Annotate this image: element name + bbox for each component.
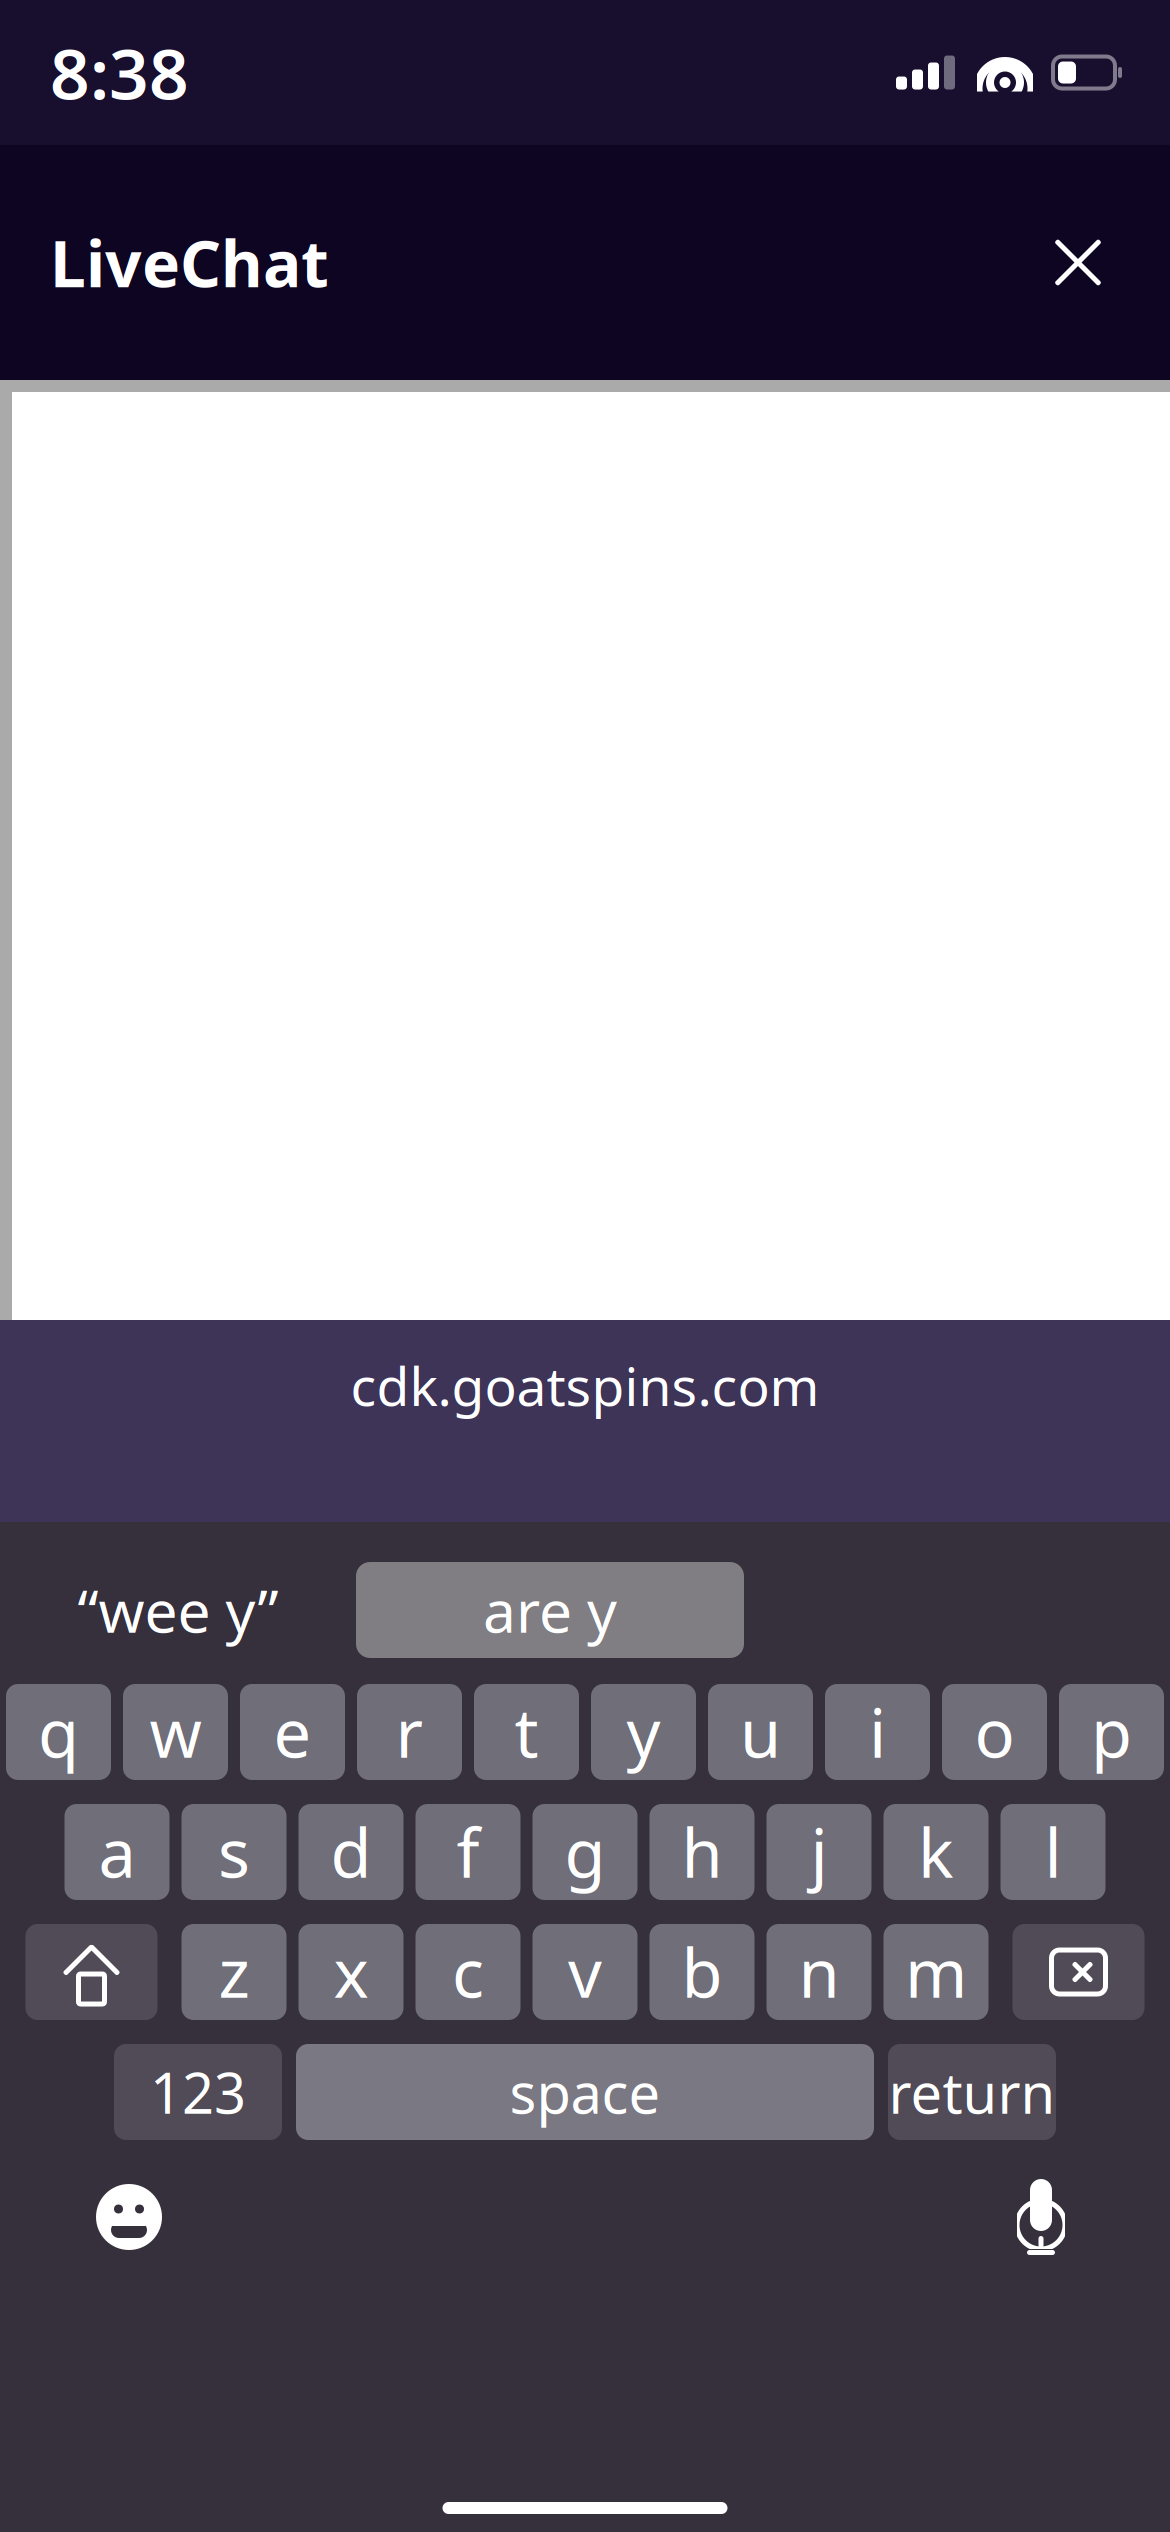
button[interactable]: m (883, 1924, 988, 2020)
button[interactable]: r (357, 1684, 462, 1780)
staticText: w (149, 1688, 201, 1776)
staticText: o (974, 1688, 1014, 1776)
staticText: space (509, 2055, 660, 2129)
button[interactable]: e (240, 1684, 345, 1780)
staticText: b (681, 1928, 722, 2016)
staticText: h (681, 1808, 722, 1896)
button[interactable]: k (883, 1804, 988, 1900)
staticText: s (218, 1808, 250, 1896)
button[interactable]: b (649, 1924, 754, 2020)
staticText: i (869, 1688, 886, 1776)
staticText: j (810, 1808, 827, 1896)
button[interactable]: Dictate (986, 2162, 1096, 2272)
staticText: m (905, 1928, 967, 2016)
staticText: are y (483, 1571, 617, 1649)
button[interactable]: v (532, 1924, 637, 2020)
staticText: t (514, 1688, 538, 1776)
button[interactable]: Emoji (74, 2162, 184, 2272)
button[interactable]: Shift (25, 1924, 157, 2020)
staticText: d (330, 1808, 371, 1896)
button[interactable]: “wee y” (0, 1562, 356, 1658)
staticText: r (395, 1688, 423, 1776)
staticText: q (38, 1688, 79, 1776)
button[interactable]: return (888, 2044, 1056, 2140)
button[interactable]: j (766, 1804, 871, 1900)
staticText: l (1044, 1808, 1061, 1896)
button[interactable]: f (415, 1804, 520, 1900)
button[interactable]: l (1000, 1804, 1105, 1900)
staticText: v (568, 1928, 602, 2016)
button[interactable]: i (825, 1684, 930, 1780)
staticText: u (740, 1688, 781, 1776)
staticText: 8:38 (50, 26, 189, 119)
button[interactable]: are y (356, 1562, 744, 1658)
button[interactable]: space (296, 2044, 874, 2140)
button[interactable]: a (64, 1804, 169, 1900)
button[interactable]: t (474, 1684, 579, 1780)
button[interactable]: z (181, 1924, 286, 2020)
button[interactable]: o (942, 1684, 1047, 1780)
staticText: f (456, 1808, 479, 1896)
staticText: x (333, 1928, 368, 2016)
button[interactable]: q (6, 1684, 111, 1780)
button[interactable]: g (532, 1804, 637, 1900)
staticText: y (626, 1688, 660, 1776)
button[interactable]: w (123, 1684, 228, 1780)
staticText: z (218, 1928, 249, 2016)
staticText: return (888, 2055, 1055, 2129)
button[interactable]: h (649, 1804, 754, 1900)
staticText: a (98, 1808, 135, 1896)
button[interactable]: u (708, 1684, 813, 1780)
staticText: p (1091, 1688, 1132, 1776)
button[interactable]: p (1059, 1684, 1164, 1780)
button[interactable]: d (298, 1804, 403, 1900)
staticText: k (918, 1808, 954, 1896)
staticText: c (452, 1928, 484, 2016)
staticText: 123 (150, 2055, 246, 2129)
button[interactable]: n (766, 1924, 871, 2020)
button[interactable]: c (415, 1924, 520, 2020)
button[interactable]: Delete (1012, 1924, 1144, 2020)
button[interactable]: Close (1030, 214, 1126, 310)
button[interactable]: s (181, 1804, 286, 1900)
staticText: LiveChat (50, 220, 329, 305)
staticText: “wee y” (77, 1571, 278, 1649)
button[interactable]: 123 (114, 2044, 282, 2140)
staticText: n (798, 1928, 839, 2016)
staticText: g (564, 1808, 605, 1896)
button[interactable]: y (591, 1684, 696, 1780)
staticText: e (273, 1688, 311, 1776)
staticText: cdk.goatspins.com (350, 1350, 819, 1421)
button[interactable]: x (298, 1924, 403, 2020)
